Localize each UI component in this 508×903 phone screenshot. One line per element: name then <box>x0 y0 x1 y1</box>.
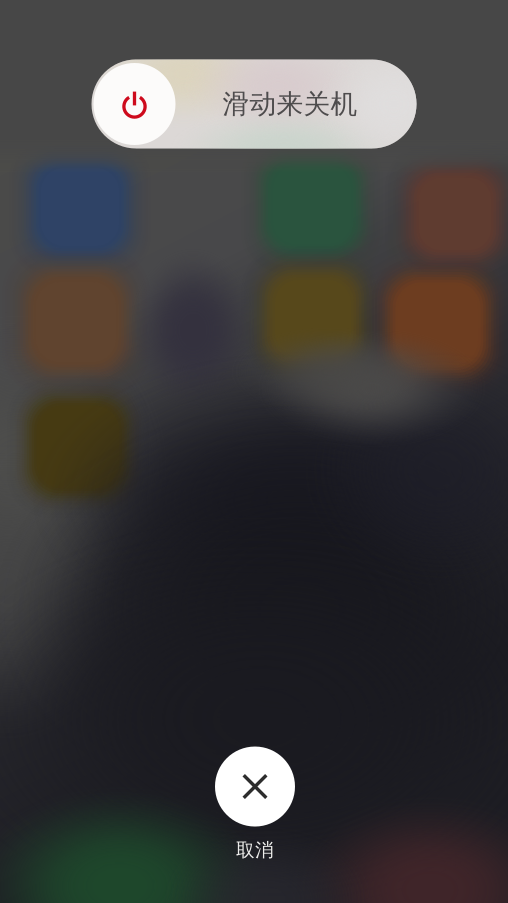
staticText: 滑动来关机 <box>222 88 357 120</box>
button[interactable]: 滑动来关机 <box>91 59 416 148</box>
staticText: 取消 <box>236 838 274 861</box>
button[interactable]: 取消 <box>215 746 295 861</box>
